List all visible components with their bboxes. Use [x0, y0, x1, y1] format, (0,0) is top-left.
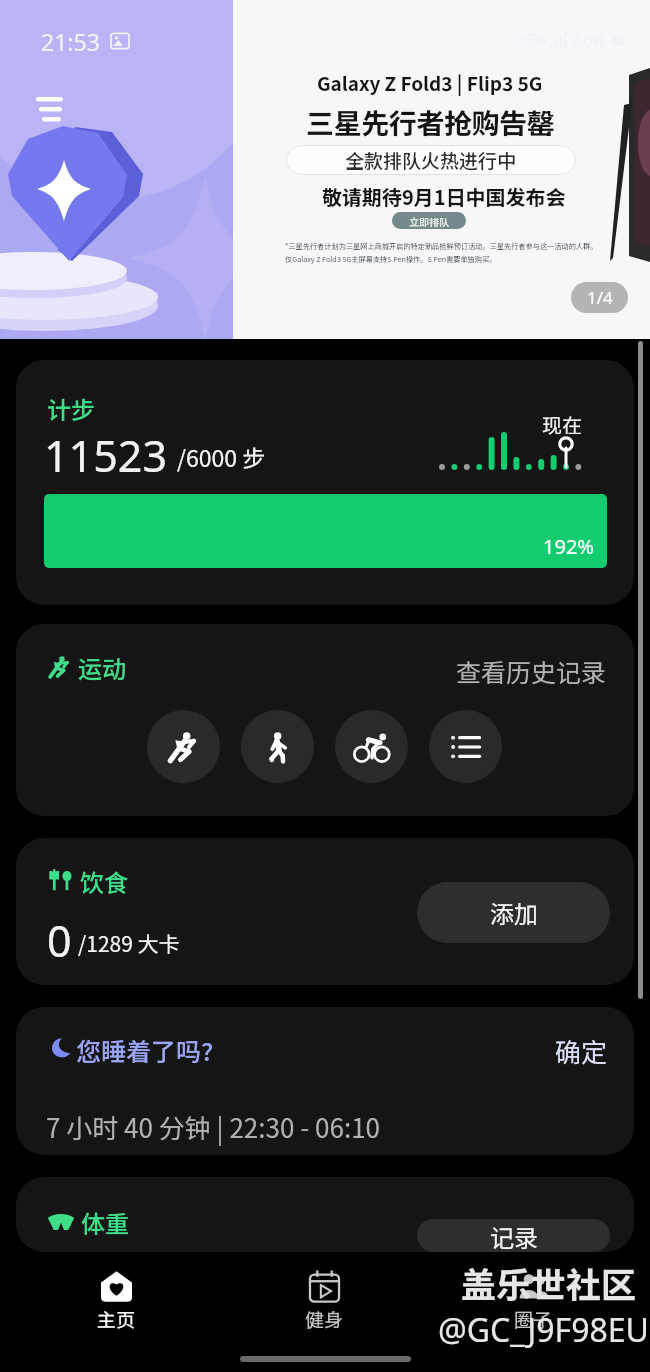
- staticText: 7 小时 40 分钟 | 22:30 - 06:10: [46, 1108, 380, 1146]
- staticText: 添加: [490, 895, 538, 930]
- staticText: /1289 大卡: [78, 928, 180, 958]
- staticText: 11523: [44, 426, 167, 485]
- staticText: 0: [47, 911, 72, 970]
- staticText: 三星先行者抢购告罄: [306, 102, 555, 143]
- button[interactable]: 体重: [16, 1177, 634, 1252]
- staticText: 仅Galaxy Z Fold3 5G主屏幕支持S Pen操作。S Pen需要单独…: [285, 254, 497, 264]
- button[interactable]: 确定: [555, 1032, 608, 1070]
- staticText: 健身: [305, 1305, 344, 1333]
- button[interactable]: 计步: [16, 360, 634, 605]
- button[interactable]: Community: [429, 1252, 638, 1372]
- staticText: 体重: [81, 1205, 129, 1240]
- button[interactable]: 运动: [16, 624, 634, 816]
- staticText: 现在: [542, 410, 582, 439]
- staticText: 全款排队火热进行中: [345, 146, 517, 174]
- staticText: 运动: [78, 650, 126, 685]
- staticText: 盖乐世社区: [461, 1257, 637, 1308]
- staticText: 记录: [490, 1219, 538, 1252]
- button[interactable]: 查看历史记录: [456, 653, 607, 689]
- button[interactable]: Cycling: [335, 710, 408, 783]
- staticText: 敬请期待9月1日中国发布会: [322, 182, 566, 211]
- staticText: *三星先行者计划为三星网上商城开启的特定新品抢鲜预订活动。三星先行者参与这一活动…: [285, 241, 598, 251]
- staticText: @GC_J9F98EU: [438, 1308, 649, 1352]
- button[interactable]: Fitness: [220, 1252, 429, 1372]
- button[interactable]: 饮食: [16, 838, 634, 985]
- staticText: 饮食: [80, 864, 128, 899]
- button[interactable]: Running: [147, 710, 220, 783]
- button[interactable]: 添加: [417, 882, 610, 943]
- button[interactable]: More workouts: [429, 710, 502, 783]
- button[interactable]: 您睡着了吗?: [16, 1007, 634, 1155]
- staticText: 21:53: [41, 26, 100, 57]
- staticText: 计步: [47, 391, 95, 426]
- button[interactable]: Walking: [241, 710, 314, 783]
- button[interactable]: 1/4: [571, 282, 628, 313]
- staticText: 192%: [543, 533, 594, 560]
- staticText: 1/4: [587, 286, 613, 309]
- staticText: /6000 步: [177, 440, 266, 473]
- staticText: Galaxy Z Fold3 | Flip3 5G: [317, 69, 543, 97]
- button[interactable]: Galaxy Z Fold3 | Flip3 5G: [0, 0, 650, 339]
- staticText: 主页: [97, 1305, 136, 1333]
- button[interactable]: 立即排队: [392, 212, 466, 229]
- staticText: 立即排队: [409, 214, 449, 228]
- button[interactable]: Home: [12, 1252, 220, 1372]
- staticText: 圈子: [514, 1305, 553, 1333]
- button[interactable]: 记录: [417, 1219, 610, 1252]
- button[interactable]: 全款排队火热进行中: [286, 145, 576, 175]
- staticText: 您睡着了吗?: [76, 1032, 214, 1068]
